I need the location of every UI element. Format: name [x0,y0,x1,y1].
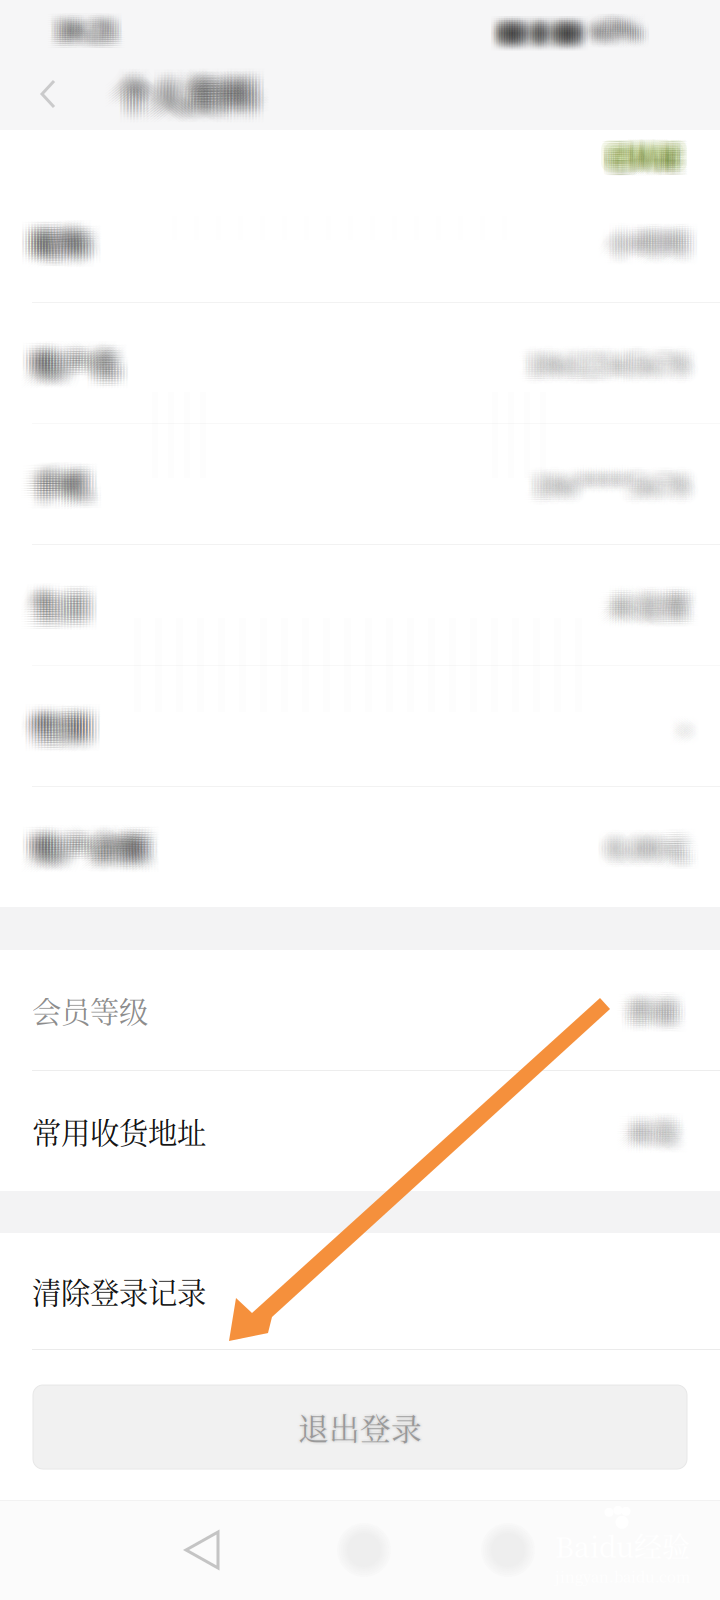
staticText: 昵称 [35,226,93,268]
button[interactable]: 手机 [0,424,720,544]
staticText: 生日 [44,581,102,624]
button[interactable]: 账户名 [0,303,720,423]
staticText: 个人资料 [110,66,250,116]
staticText: ▮▮ ▮ ▮▮ 65% [491,8,632,42]
staticText: 账户名 [41,332,128,374]
staticText: 18612345678 [539,335,700,373]
staticText: 性别 [41,695,99,737]
staticText: 18:21 [58,19,118,55]
staticText: › [688,709,697,747]
button[interactable]: Recent apps [480,1522,536,1578]
staticText: 18612345678 [522,348,683,386]
button[interactable]: 账户余额 [0,787,720,907]
staticText: 已认证 [604,144,679,181]
staticText: 退出登录 [297,1404,421,1448]
staticText: 普通 [630,998,680,1035]
staticText: 性别 [44,710,102,752]
staticText: 未设置 [613,577,694,615]
staticText: 昵称 [26,221,84,263]
staticText: ▮▮ ▮ ▮▮ 65% [496,16,637,50]
staticText: 18:21 [63,13,123,49]
button[interactable]: 清除登录记录 [0,1233,720,1349]
staticText: 个人资料 [107,79,247,129]
button[interactable]: Back [20,58,76,130]
staticText: 性别 [44,698,102,740]
staticText: 昵称 [44,230,102,273]
staticText: 生日 [32,584,90,626]
staticText: 性别 [35,714,93,757]
staticText: ▮▮ ▮ ▮▮ 65% [489,14,630,48]
staticText: 18:21 [56,13,116,49]
staticText: 未设 [627,1104,677,1140]
staticText: 生日 [26,581,84,624]
staticText: 未设置 [597,595,678,633]
staticText: 普通 [635,1001,685,1037]
staticText: › [683,709,692,747]
staticText: 18612345678 [531,335,692,373]
button[interactable]: Home [336,1522,392,1578]
staticText: 手机 [41,470,99,512]
staticText: 退出登录 [295,1405,419,1449]
staticText: 186****5678 [545,469,700,507]
staticText: 昵称 [38,218,96,261]
staticText: 未设置 [611,592,692,631]
staticText: 未设置 [619,595,700,633]
button[interactable]: 常用收货地址 [0,1071,720,1191]
staticText: 账户余额 [44,821,160,863]
staticText: › [685,716,694,754]
staticText: 性别 [29,710,87,752]
staticText: 账户名 [41,337,128,379]
staticText: 昵称 [44,226,102,268]
button[interactable]: 昵称 [0,182,720,302]
button[interactable]: 性别 [0,666,720,786]
staticText: ▮▮ ▮ ▮▮ 65% [494,10,635,44]
staticText: 小明明 [600,214,681,252]
staticText: 18612345678 [531,342,692,380]
staticText: 生日 [29,593,87,636]
staticText: 18612345678 [533,350,694,389]
staticText: 未设置 [602,581,683,620]
staticText: 未设置 [605,577,686,615]
staticText: 账户余额 [26,828,142,870]
staticText: 性别 [26,702,84,745]
staticText: 未设 [632,1104,682,1140]
staticText: 账户名 [32,349,119,391]
staticText: 未设置 [611,590,692,628]
staticText: 性别 [23,698,81,740]
button[interactable]: 会员等级 [0,950,720,1070]
staticText: 普通 [638,990,688,1026]
button[interactable]: Back [176,1520,236,1580]
staticText: 小明明 [619,214,700,252]
staticText: 昵称 [41,228,99,270]
staticText: 账户余额 [41,828,157,870]
staticText: 未设 [638,1106,688,1143]
staticText: 个人资料 [120,79,260,129]
staticText: › [672,707,681,745]
staticText: ▮▮ ▮ ▮▮ 65% [501,20,642,54]
staticText: 0.00元 [605,821,686,859]
staticText: 个人资料 [107,72,247,121]
staticText: 手机 [35,468,93,510]
staticText: 186****5678 [528,474,683,512]
staticText: 186****5678 [528,469,683,507]
staticText: 普通 [624,985,674,1022]
button[interactable]: 生日 [0,545,720,665]
staticText: 186****5678 [523,469,678,507]
staticText: › [688,698,697,736]
staticText: 未设置 [597,579,678,617]
staticText: › [677,698,686,736]
staticText: 个人资料 [110,77,250,127]
staticText: 昵称 [26,223,84,265]
staticText: 退出登录 [301,1407,425,1451]
staticText: 手机 [38,465,96,507]
staticText: 18:21 [63,11,123,47]
staticText: 未设置 [605,595,686,633]
staticText: 生日 [32,591,90,633]
staticText: ▮▮ ▮ ▮▮ 65% [496,10,637,44]
staticText: 个人资料 [114,66,254,116]
button[interactable]: 退出登录 [0,1350,720,1469]
staticText: 18:21 [53,15,113,51]
staticText: 未设 [616,1117,666,1154]
staticText: 手机 [32,465,90,507]
button[interactable]: Edit profile [592,133,696,179]
